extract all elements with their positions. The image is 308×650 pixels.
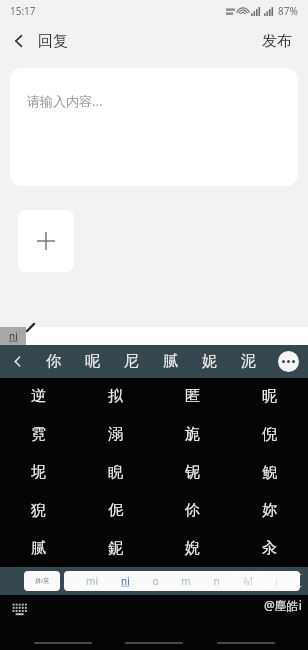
button[interactable]: 逆 [0, 378, 77, 415]
button[interactable]: Switch keyboard [8, 599, 32, 623]
staticText: 猊 [31, 501, 46, 520]
staticText: 妮 [202, 352, 217, 371]
staticText: ni [9, 329, 18, 343]
staticText: 你 [46, 352, 61, 371]
button[interactable]: 腻 [151, 345, 190, 378]
staticText: 鲵 [262, 463, 277, 482]
staticText: 汆 [262, 539, 277, 558]
staticText: 腻 [163, 352, 178, 371]
button[interactable]: 回复 [38, 26, 68, 57]
staticText: 昵 [262, 387, 277, 406]
button[interactable]: 铌 [154, 453, 231, 491]
button[interactable]: 伱 [154, 491, 231, 529]
staticText: 呢 [85, 352, 100, 371]
button[interactable]: Previous candidates [0, 345, 34, 378]
button[interactable]: 你 [34, 345, 73, 378]
staticText: 妳 [262, 501, 277, 520]
staticText: 泥 [241, 352, 256, 371]
button[interactable]: 鈮 [77, 529, 154, 567]
staticText: 伲 [108, 501, 123, 520]
button[interactable]: l [275, 574, 278, 588]
button[interactable]: ni [0, 327, 26, 345]
button[interactable]: 拼/英 [24, 571, 60, 591]
button[interactable]: 发布 [246, 26, 308, 57]
button[interactable]: 倪 [231, 415, 308, 453]
button[interactable]: m [181, 574, 191, 588]
staticText: 倪 [262, 425, 277, 444]
staticText: 匿 [185, 387, 200, 406]
button[interactable]: 猊 [0, 491, 77, 529]
button[interactable]: 昵 [231, 378, 308, 415]
button[interactable]: 鲵 [231, 453, 308, 491]
button[interactable]: 溺 [77, 415, 154, 453]
button[interactable]: 汆 [231, 529, 308, 567]
staticText: ni [121, 574, 130, 588]
staticText: 请输入内容... [27, 92, 103, 110]
button[interactable]: 妳 [231, 491, 308, 529]
staticText: 睨 [108, 463, 123, 482]
staticText: 溺 [108, 425, 123, 444]
button[interactable]: ni [121, 574, 130, 588]
button[interactable]: More options [268, 345, 308, 378]
staticText: 尼 [124, 352, 139, 371]
staticText: 逆 [31, 387, 46, 406]
staticText: 坭 [31, 463, 46, 482]
staticText: 拼/英 [35, 577, 50, 585]
staticText: 发布 [262, 32, 292, 51]
button[interactable]: Back [0, 22, 38, 60]
button[interactable]: 匿 [154, 378, 231, 415]
button[interactable]: 坭 [0, 453, 77, 491]
staticText: l [275, 574, 278, 588]
staticText: M [243, 574, 253, 588]
button[interactable]: 拟 [77, 378, 154, 415]
button[interactable]: 妮 [190, 345, 229, 378]
staticText: 伱 [185, 501, 200, 520]
button[interactable]: 腻 [0, 529, 77, 567]
staticText: n [213, 574, 220, 588]
button[interactable]: Navigation gesture hint [125, 642, 183, 644]
staticText: 盖乐世社区 [227, 572, 302, 591]
staticText: 鈮 [108, 539, 123, 558]
staticText: 铌 [185, 463, 200, 482]
button[interactable]: 尼 [112, 345, 151, 378]
staticText: 87% [278, 4, 298, 18]
button[interactable]: o [152, 574, 159, 588]
button[interactable]: 婗 [154, 529, 231, 567]
button[interactable]: n [213, 574, 220, 588]
staticText: 腻 [31, 539, 46, 558]
button[interactable]: Navigation gesture hint [34, 642, 92, 644]
staticText: @塵皓i [264, 597, 302, 613]
staticText: o [152, 574, 159, 588]
staticText: 霓 [31, 425, 46, 444]
button[interactable]: 呢 [73, 345, 112, 378]
button[interactable]: 泥 [229, 345, 268, 378]
button[interactable]: mi [86, 574, 98, 588]
button[interactable]: 旎 [154, 415, 231, 453]
button[interactable]: 霓 [0, 415, 77, 453]
staticText: 婗 [185, 539, 200, 558]
staticText: m [181, 574, 191, 588]
staticText: mi [86, 574, 98, 588]
staticText: 回复 [38, 32, 68, 51]
button[interactable]: Navigation gesture hint [217, 642, 275, 644]
button[interactable]: 睨 [77, 453, 154, 491]
button[interactable]: Add image [18, 210, 74, 272]
staticText: 旎 [185, 425, 200, 444]
button[interactable]: 伲 [77, 491, 154, 529]
staticText: 15:17 [10, 4, 36, 18]
button[interactable]: 请输入内容... [10, 68, 298, 186]
button[interactable]: M [243, 574, 253, 588]
staticText: 拟 [108, 387, 123, 406]
